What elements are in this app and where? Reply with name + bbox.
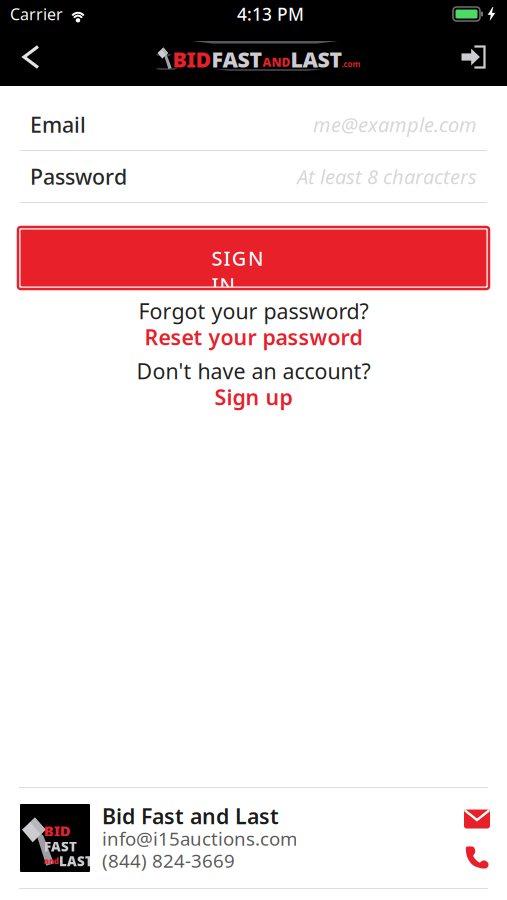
- staticText: .com: [341, 59, 360, 69]
- staticText: Bid Fast and Last: [102, 802, 279, 830]
- staticText: BID: [172, 45, 211, 73]
- staticText: SIGN IN: [211, 245, 296, 271]
- staticText: Email: [30, 110, 86, 139]
- staticText: LAST: [59, 852, 93, 870]
- button[interactable]: Sign up: [214, 384, 292, 410]
- button[interactable]: SIGN IN: [18, 227, 489, 289]
- staticText: FAST: [211, 45, 262, 73]
- staticText: AND: [262, 54, 290, 70]
- staticText: Forgot your password?: [138, 297, 368, 325]
- staticText: At least 8 characters: [297, 163, 477, 190]
- staticText: 4:13 PM: [237, 2, 304, 25]
- staticText: Reset your password: [144, 323, 362, 351]
- button[interactable]: Email: [458, 800, 496, 838]
- staticText: LAST: [290, 45, 342, 73]
- staticText: Carrier: [10, 3, 63, 25]
- button[interactable]: Reset your password: [144, 324, 362, 350]
- staticText: me@example.com: [313, 111, 477, 138]
- staticText: BID: [44, 821, 71, 840]
- button[interactable]: Call: [458, 838, 496, 876]
- button[interactable]: Sign in: [449, 31, 497, 83]
- staticText: FAST: [44, 837, 77, 855]
- staticText: Password: [30, 162, 127, 191]
- staticText: (844) 824-3669: [102, 848, 235, 873]
- staticText: Don't have an account?: [136, 357, 370, 385]
- staticText: Sign up: [214, 383, 292, 411]
- staticText: info@i15auctions.com: [102, 826, 297, 851]
- staticText: and: [44, 856, 59, 866]
- button[interactable]: Back: [10, 31, 52, 83]
